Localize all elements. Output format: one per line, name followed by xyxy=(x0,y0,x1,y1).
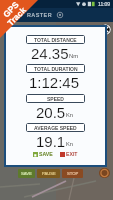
staticText: PAUSE xyxy=(42,171,56,176)
staticText: TOTAL DURATION xyxy=(34,66,78,72)
staticText: SAVE xyxy=(39,151,53,157)
button[interactable]: TOTAL DISTANCE xyxy=(26,35,85,44)
button[interactable]: SAVE xyxy=(33,151,53,157)
staticText: Track xyxy=(5,4,28,27)
staticText: 19.1 xyxy=(36,133,66,150)
staticText: SAVE xyxy=(21,171,32,176)
staticText: 11:09 xyxy=(98,1,111,7)
staticText: TOTAL DISTANCE xyxy=(34,37,77,43)
staticText: Kn xyxy=(66,112,74,118)
button[interactable]: SPEED xyxy=(26,94,85,103)
staticText: Kn xyxy=(66,141,74,147)
staticText: RASTER xyxy=(27,12,53,18)
button[interactable]: TOTAL DURATION xyxy=(26,64,85,73)
button[interactable]: STOP xyxy=(62,169,83,178)
staticText: EXIT xyxy=(66,151,78,157)
button[interactable]: PAUSE xyxy=(37,169,60,178)
button[interactable]: AVERAGE SPEED xyxy=(26,123,85,132)
staticText: AVERAGE SPEED xyxy=(34,125,77,131)
staticText: 1:12:45 xyxy=(29,74,80,91)
staticText: SPEED xyxy=(47,96,64,102)
button[interactable]: Center map xyxy=(100,24,111,35)
staticText: 20.5 xyxy=(36,104,66,121)
staticText: STOP xyxy=(67,171,79,176)
button[interactable]: Record track xyxy=(99,168,110,178)
button[interactable]: EXIT xyxy=(60,151,78,157)
staticText: GPS xyxy=(1,0,20,19)
button[interactable]: Map layers xyxy=(56,11,64,19)
staticText: Nm xyxy=(69,53,79,59)
button[interactable]: SAVE xyxy=(18,169,35,178)
staticText: 24.35 xyxy=(31,45,69,62)
